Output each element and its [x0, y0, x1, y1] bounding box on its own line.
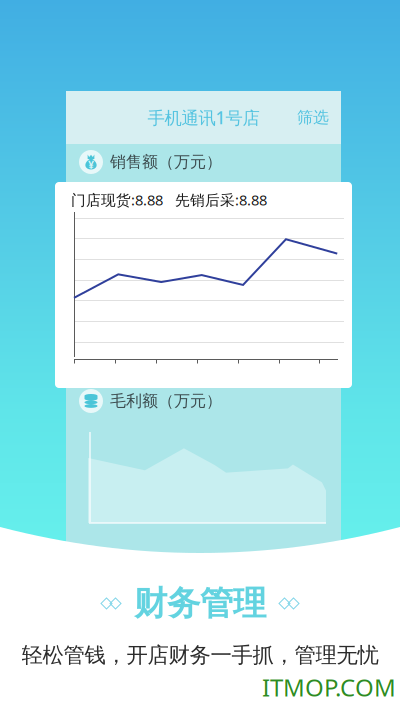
staticText: 轻松管钱，开店财务一手抓，管理无忧 [21, 642, 378, 668]
staticText: 筛选 [297, 108, 329, 127]
staticText: 毛利额（万元） [110, 391, 222, 411]
staticText: 销售额（万元） [110, 152, 222, 172]
staticText: 手机通讯1号店 [147, 106, 259, 129]
staticText: 门店现货:8.88 先销后采:8.88 [71, 190, 267, 209]
staticText: 财务管理 [134, 583, 266, 624]
staticText: ITMOP.COM [262, 671, 396, 703]
staticText: ¥ [88, 157, 94, 172]
